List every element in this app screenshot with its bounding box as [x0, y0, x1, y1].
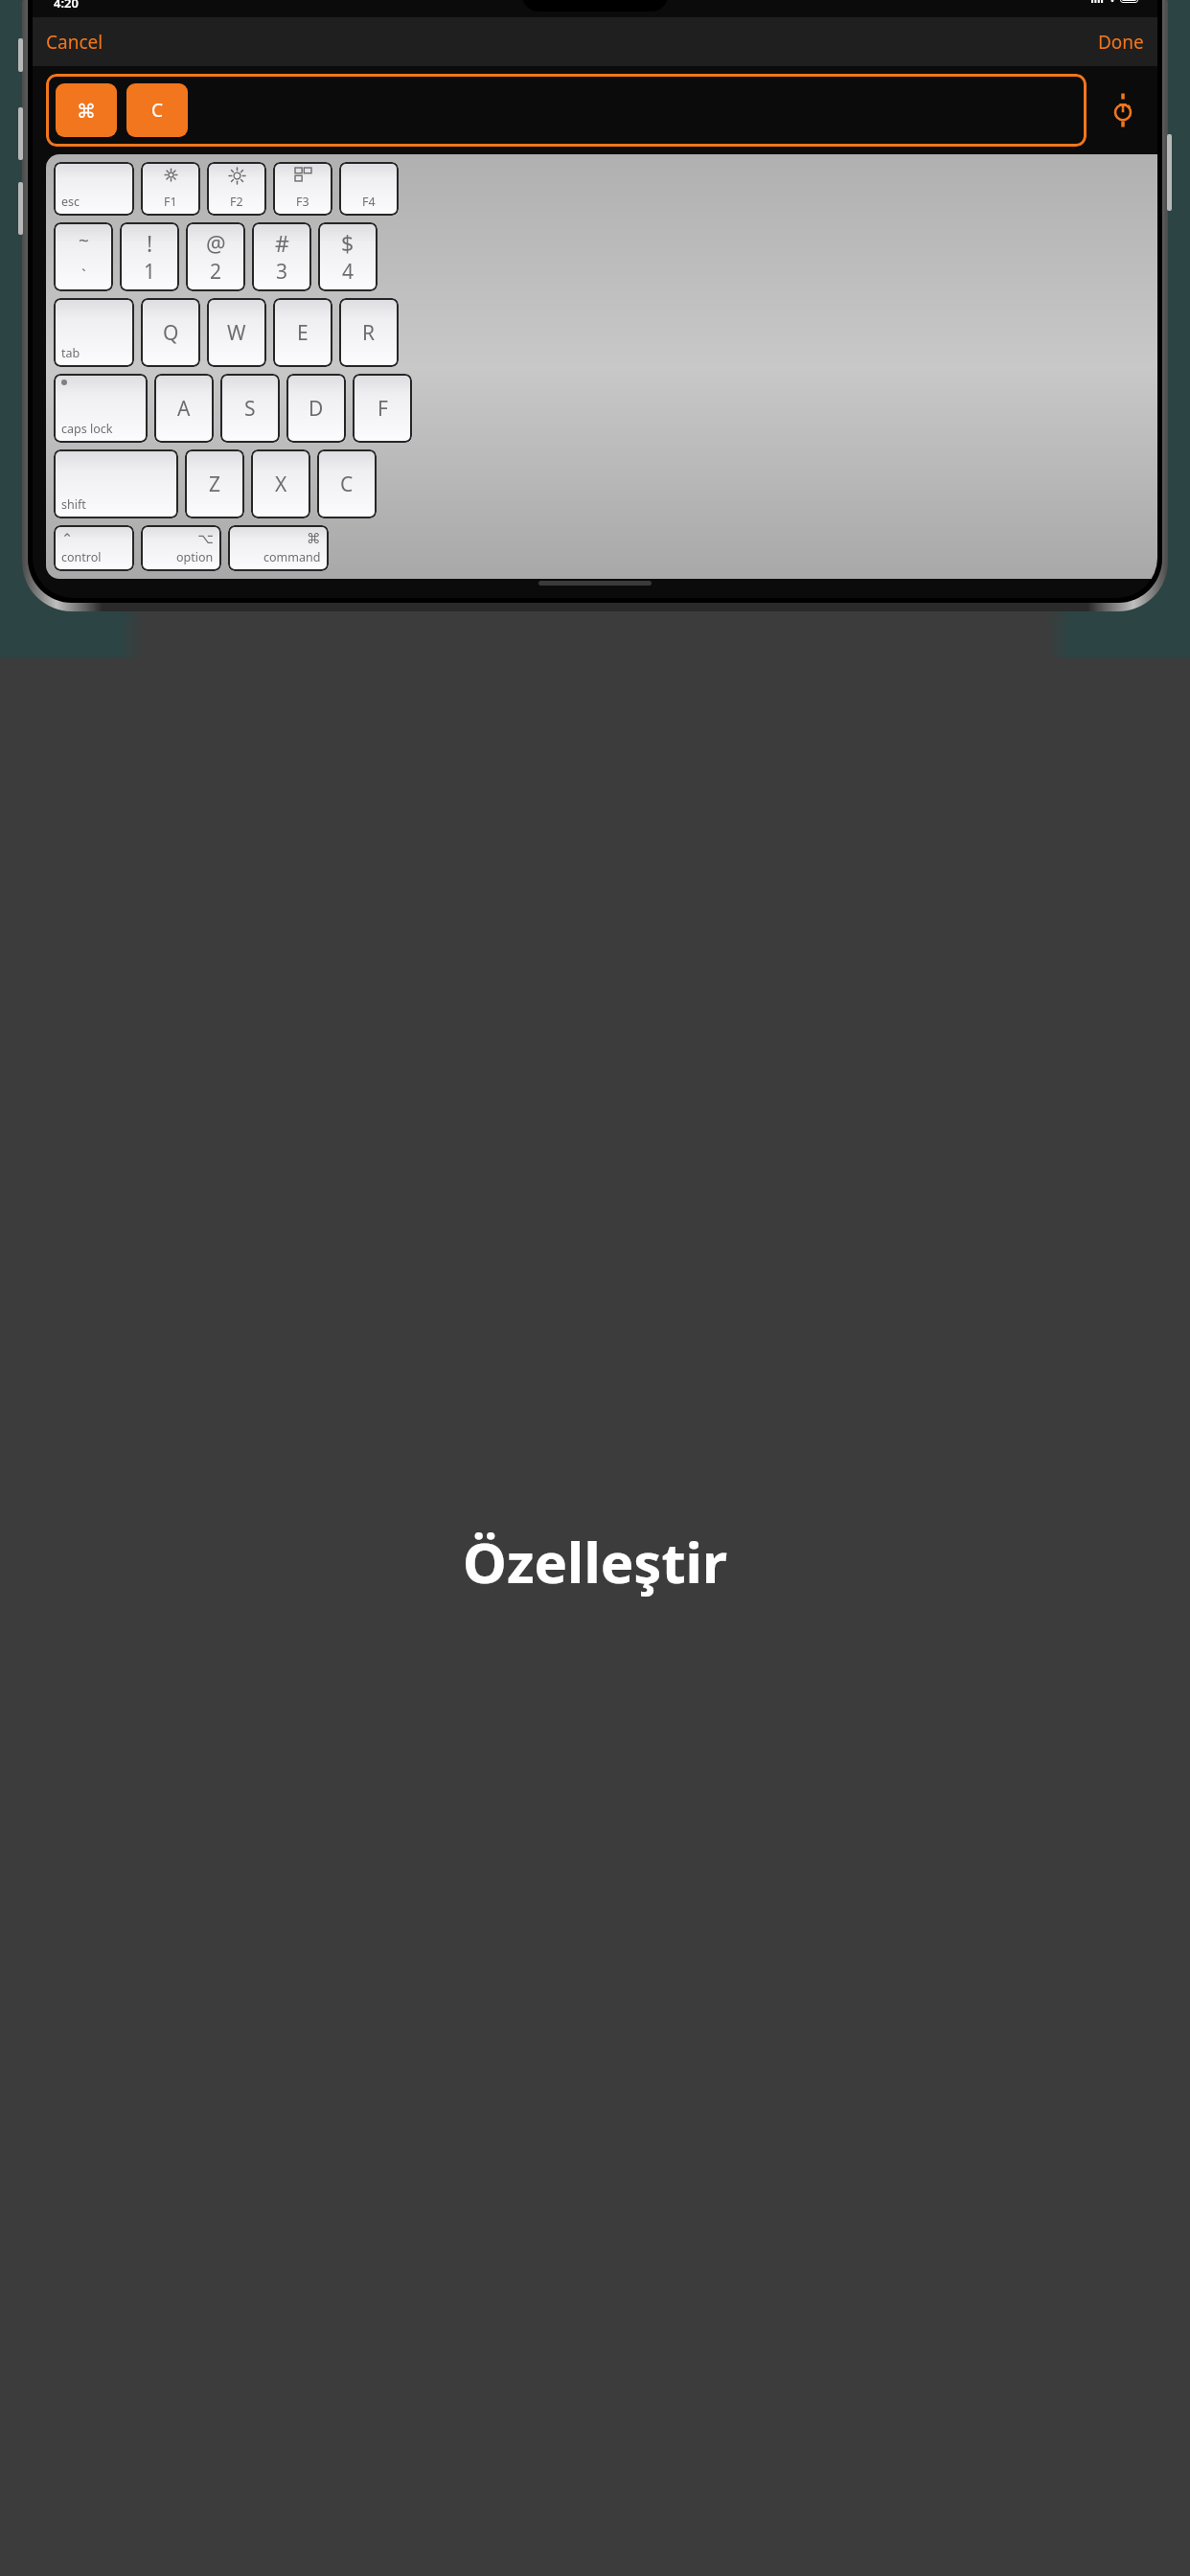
staticText: 3 — [276, 258, 288, 286]
staticText: ! — [147, 228, 153, 258]
button[interactable]: S — [220, 374, 280, 443]
button[interactable]: @ — [186, 222, 245, 291]
staticText: option — [176, 549, 214, 565]
staticText: X — [275, 471, 287, 498]
button[interactable]: ⌥ — [141, 525, 221, 571]
button[interactable]: Timer — [1102, 74, 1144, 147]
staticText: A — [177, 395, 191, 423]
staticText: F4 — [362, 194, 376, 210]
button[interactable]: C — [317, 449, 377, 518]
button[interactable]: ! — [120, 222, 179, 291]
button[interactable]: X — [251, 449, 310, 518]
staticText: $ — [341, 228, 355, 258]
staticText: F3 — [296, 194, 309, 210]
staticText: R — [362, 319, 376, 347]
button[interactable]: $ — [318, 222, 378, 291]
button[interactable]: caps lock — [54, 374, 148, 443]
staticText: 2 — [210, 258, 222, 286]
button[interactable]: F1 — [141, 162, 200, 216]
staticText: Q — [163, 319, 179, 347]
button[interactable]: ~ — [54, 222, 113, 291]
staticText: esc — [61, 194, 80, 210]
staticText: ⌘ — [77, 100, 96, 122]
button[interactable]: F — [353, 374, 412, 443]
button[interactable]: C — [126, 83, 188, 137]
staticText: ⌃ — [61, 531, 74, 547]
other: Volume up — [18, 107, 23, 160]
staticText: Z — [209, 471, 221, 498]
staticText: C — [340, 471, 354, 498]
staticText: S — [244, 395, 256, 423]
staticText: Özelleştir — [463, 1524, 727, 1599]
staticText: ⌥ — [197, 531, 214, 547]
button[interactable]: Done — [1085, 22, 1157, 62]
other: Mute switch — [18, 38, 23, 72]
staticText: 4:20 — [54, 0, 79, 11]
button[interactable]: Cancel — [33, 22, 117, 62]
button[interactable]: F3 — [273, 162, 332, 216]
staticText: D — [309, 395, 324, 423]
button[interactable]: Command key — [56, 83, 117, 137]
button[interactable]: D — [286, 374, 346, 443]
button[interactable]: ⌘ — [228, 525, 329, 571]
button[interactable]: # — [252, 222, 311, 291]
button[interactable]: A — [154, 374, 214, 443]
button[interactable]: esc — [54, 162, 134, 216]
staticText: ` — [81, 264, 86, 286]
button[interactable]: shift — [54, 449, 178, 518]
staticText: ~ — [79, 228, 89, 253]
staticText: F — [378, 395, 388, 423]
staticText: tab — [61, 345, 80, 361]
button[interactable]: E — [273, 298, 332, 367]
staticText: 1 — [144, 258, 156, 286]
button[interactable]: tab — [54, 298, 134, 367]
staticText: Cancel — [46, 30, 103, 55]
staticText: control — [61, 549, 102, 565]
other: Volume down — [18, 182, 23, 235]
button[interactable]: Command key — [46, 74, 1087, 147]
staticText: shift — [61, 496, 86, 513]
button[interactable]: Z — [185, 449, 244, 518]
staticText: # — [275, 228, 289, 258]
staticText: C — [151, 98, 164, 123]
staticText: command — [263, 549, 321, 565]
staticText: Done — [1098, 30, 1144, 55]
button[interactable]: F2 — [207, 162, 266, 216]
staticText: @ — [206, 228, 226, 258]
staticText: F1 — [164, 194, 177, 210]
button[interactable]: R — [339, 298, 399, 367]
staticText: 4 — [342, 258, 355, 286]
other: Side button — [1167, 134, 1172, 211]
staticText: W — [227, 319, 246, 347]
staticText: F2 — [230, 194, 243, 210]
staticText: E — [297, 319, 309, 347]
staticText: ⌘ — [307, 531, 321, 547]
button[interactable]: Q — [141, 298, 200, 367]
button[interactable]: F4 — [339, 162, 399, 216]
button[interactable]: ⌃ — [54, 525, 134, 571]
staticText: caps lock — [61, 421, 113, 437]
button[interactable]: W — [207, 298, 266, 367]
